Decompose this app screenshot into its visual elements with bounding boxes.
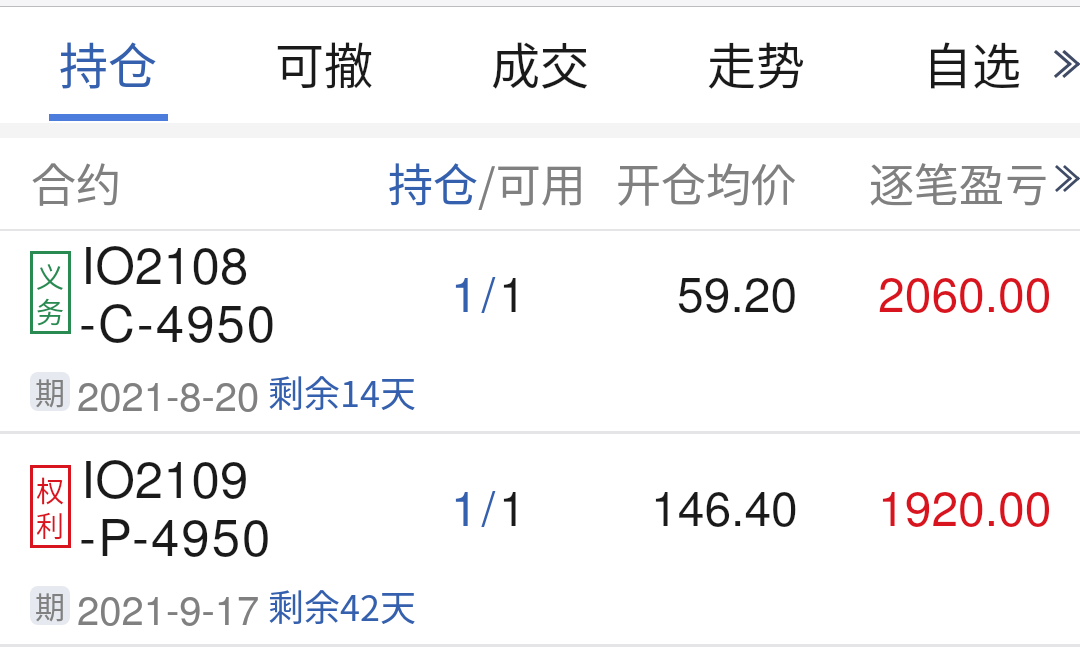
staticText: 1920.00 — [878, 471, 1052, 540]
button[interactable]: 自选 — [864, 5, 1080, 123]
staticText: 持仓/可用 — [388, 150, 586, 215]
staticText: 持仓 — [59, 27, 158, 98]
button[interactable]: More tabs — [1042, 42, 1080, 86]
staticText: 期 — [35, 586, 65, 622]
staticText: 合约 — [31, 150, 122, 215]
staticText: -P-4950 — [79, 497, 273, 570]
staticText: 成交 — [491, 27, 590, 98]
button[interactable]: 权 — [0, 445, 1080, 644]
button[interactable]: 持仓 — [0, 5, 216, 123]
staticText: 2021-8-20 — [77, 365, 260, 422]
staticText: IO2109 — [81, 439, 249, 512]
staticText: 2021-9-17 — [77, 579, 260, 636]
staticText: 务 — [36, 291, 65, 332]
staticText: 剩余14天 — [268, 365, 416, 417]
staticText: 2060.00 — [878, 257, 1052, 326]
staticText: 1/1 — [451, 471, 530, 540]
button[interactable]: 义 — [0, 231, 1080, 432]
button[interactable]: 成交 — [432, 5, 648, 123]
staticText: 走势 — [707, 27, 806, 98]
staticText: 逐笔盈亏 — [869, 150, 1050, 215]
staticText: 1/1 — [451, 257, 530, 326]
button[interactable]: 走势 — [648, 5, 864, 123]
staticText: 开仓均价 — [616, 150, 797, 215]
staticText: 利 — [36, 505, 65, 546]
staticText: 自选 — [923, 27, 1022, 98]
staticText: -C-4950 — [79, 283, 278, 356]
staticText: 146.40 — [651, 471, 798, 540]
button[interactable]: 可撤 — [216, 5, 432, 123]
staticText: IO2108 — [81, 225, 249, 298]
staticText: 剩余42天 — [268, 579, 416, 631]
button[interactable]: More columns — [1048, 156, 1080, 198]
staticText: 权 — [36, 470, 65, 511]
staticText: 59.20 — [677, 257, 798, 326]
staticText: 义 — [36, 256, 65, 297]
staticText: 可撤 — [275, 27, 374, 98]
staticText: 期 — [35, 372, 65, 408]
